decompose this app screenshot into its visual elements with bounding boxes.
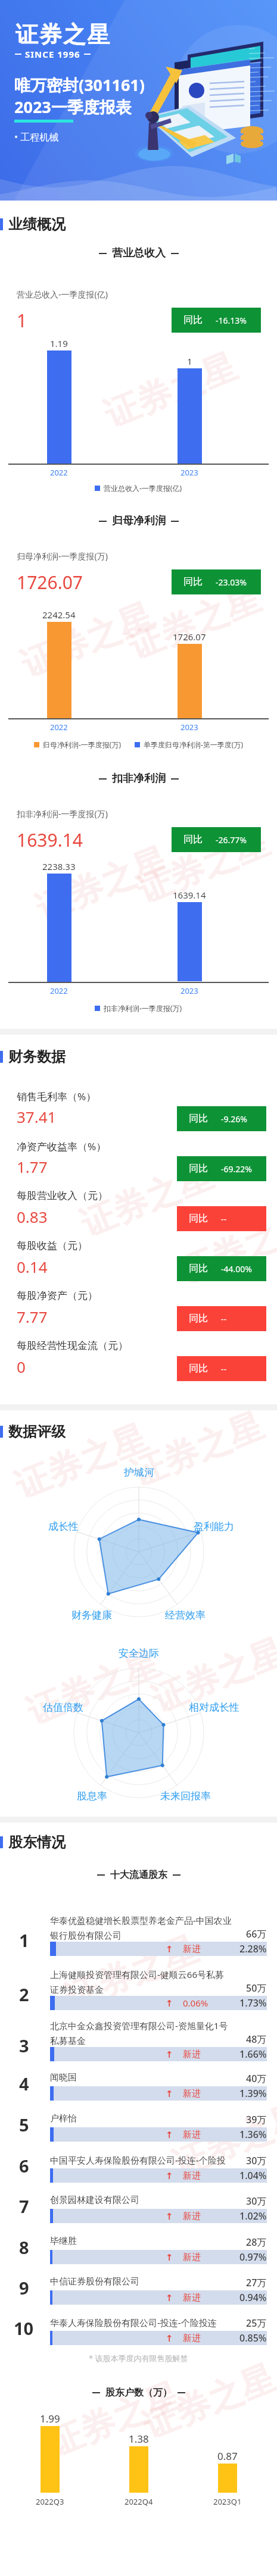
staticText: -16.13%: [216, 315, 247, 326]
staticText: 2022: [50, 722, 68, 733]
staticText: 中国平安人寿保险股份有限公司-投连-个险投连: [50, 2154, 232, 2181]
staticText: 0.85%: [239, 2331, 267, 2345]
staticText: 上海健顺投资管理有限公司-健顺云66号私募证券投资基金: [50, 1968, 232, 1995]
staticText: ↑: [166, 2211, 173, 2221]
staticText: 华泰人寿保险股份有限公司-投连-个险投连: [50, 2317, 217, 2328]
staticText: 股东情况: [8, 1833, 66, 1851]
staticText: 同比: [189, 1363, 208, 1375]
staticText: 归母净利润-一季度报(万): [17, 550, 108, 562]
staticText: 9: [19, 2276, 29, 2299]
staticText: --: [221, 1313, 227, 1325]
staticText: 同比: [183, 576, 203, 588]
staticText: 4: [19, 2072, 29, 2095]
staticText: 证券之星: [122, 577, 266, 669]
staticText: 每股营业收入（元）: [17, 1190, 108, 1202]
button[interactable]: [0, 2313, 277, 2349]
button[interactable]: [0, 2191, 277, 2227]
staticText: 27万: [246, 2276, 267, 2289]
staticText: ↑: [166, 1998, 173, 2008]
staticText: 2238.33: [42, 860, 76, 872]
staticText: 营业总收入-一季度报(亿): [104, 483, 182, 493]
staticText: 1: [17, 308, 27, 333]
staticText: 业绩概况: [8, 215, 66, 233]
staticText: 30万: [246, 2154, 267, 2167]
staticText: 股东户数（万）: [105, 2387, 172, 2399]
staticText: SINCE 1996: [25, 48, 80, 60]
staticText: 1: [187, 355, 192, 367]
staticText: 新进: [183, 2170, 201, 2181]
staticText: ↑: [166, 2333, 173, 2343]
button[interactable]: 同比: [177, 1206, 266, 1231]
staticText: 2: [19, 1983, 29, 2006]
staticText: 66万: [246, 1927, 267, 1940]
staticText: ↑: [166, 2130, 173, 2140]
staticText: 3: [19, 2034, 29, 2057]
button[interactable]: 同比: [177, 1256, 266, 1281]
staticText: -9.26%: [221, 1113, 247, 1125]
button[interactable]: [0, 2109, 277, 2145]
staticText: 新进: [183, 2211, 201, 2222]
button[interactable]: [0, 2151, 277, 2186]
staticText: 同比: [189, 1263, 208, 1275]
staticText: 2023: [180, 985, 198, 996]
staticText: 新进: [183, 2292, 201, 2303]
staticText: 数据评级: [8, 1423, 66, 1441]
staticText: 闻晓国: [50, 2072, 77, 2083]
staticText: 2242.54: [42, 609, 76, 621]
staticText: 新进: [183, 2333, 201, 2344]
staticText: 0.97%: [239, 2251, 267, 2264]
staticText: 新进: [183, 2088, 201, 2099]
staticText: 归母净利润-一季度报(万): [43, 740, 122, 749]
staticText: 创景园林建设有限公司: [50, 2195, 139, 2206]
staticText: 1639.14: [173, 889, 206, 901]
button[interactable]: [0, 2273, 277, 2308]
staticText: 同比: [189, 1313, 208, 1325]
button[interactable]: 同比: [172, 827, 261, 852]
staticText: 中信证券股份有限公司: [50, 2276, 139, 2287]
staticText: 扣非净利润-一季度报(万): [104, 1003, 182, 1013]
staticText: 证券之星: [146, 1630, 277, 1722]
staticText: 经营效率: [165, 1609, 206, 1622]
staticText: 1726.07: [17, 570, 83, 594]
button[interactable]: 同比: [177, 1356, 266, 1381]
staticText: 1.02%: [239, 2209, 267, 2223]
staticText: 40万: [246, 2072, 267, 2085]
staticText: 股息率: [77, 1790, 107, 1802]
staticText: 2022Q4: [125, 2496, 153, 2507]
staticText: 48万: [246, 2033, 267, 2046]
staticText: 25万: [246, 2317, 267, 2330]
button[interactable]: [0, 2068, 277, 2104]
staticText: 证券之星: [21, 1642, 165, 1734]
staticText: 30万: [246, 2195, 267, 2208]
staticText: 相对成长性: [189, 1701, 239, 1714]
staticText: • 工程机械: [14, 130, 59, 143]
staticText: 1.19: [50, 337, 68, 349]
button[interactable]: [0, 1911, 277, 1960]
staticText: 1639.14: [17, 828, 83, 852]
button[interactable]: 同比: [172, 569, 261, 594]
staticText: 同比: [183, 314, 203, 326]
staticText: 证券之星: [125, 1404, 269, 1496]
staticText: 1.36%: [239, 2128, 267, 2141]
staticText: 证券之星: [15, 595, 159, 687]
staticText: ↑: [166, 2049, 173, 2059]
button[interactable]: 同比: [177, 1106, 266, 1131]
button[interactable]: 同比: [172, 308, 261, 333]
staticText: 39万: [246, 2113, 267, 2126]
staticText: 8: [19, 2236, 29, 2259]
button[interactable]: [0, 1965, 277, 2014]
button[interactable]: 同比: [177, 1306, 266, 1331]
staticText: 10: [14, 2317, 34, 2340]
staticText: 同比: [183, 834, 203, 846]
button[interactable]: [0, 2016, 277, 2065]
staticText: 0: [17, 1356, 26, 1377]
staticText: 新进: [183, 2129, 201, 2140]
staticText: 扣非净利润: [112, 772, 166, 785]
staticText: 证券之星: [137, 2356, 277, 2448]
staticText: 证券之星: [167, 2094, 277, 2186]
button[interactable]: [0, 2232, 277, 2268]
staticText: 证券之星: [98, 345, 243, 437]
button[interactable]: 同比: [177, 1156, 266, 1181]
staticText: ↑: [166, 2293, 173, 2303]
staticText: 证券之星: [74, 1154, 219, 1246]
